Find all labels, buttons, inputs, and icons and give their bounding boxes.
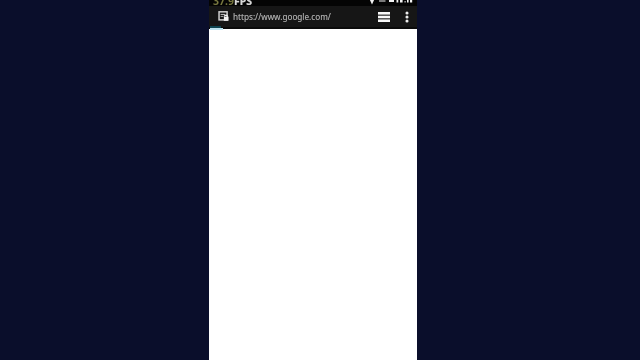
staticText: FPS: [234, 0, 253, 8]
staticText: 37.9: [213, 0, 234, 8]
staticText: https://www.google.com/: [233, 11, 331, 22]
button[interactable]: https://www.google.com/: [218, 6, 375, 27]
button[interactable]: More options: [398, 8, 416, 26]
button[interactable]: Tabs: [375, 8, 393, 26]
